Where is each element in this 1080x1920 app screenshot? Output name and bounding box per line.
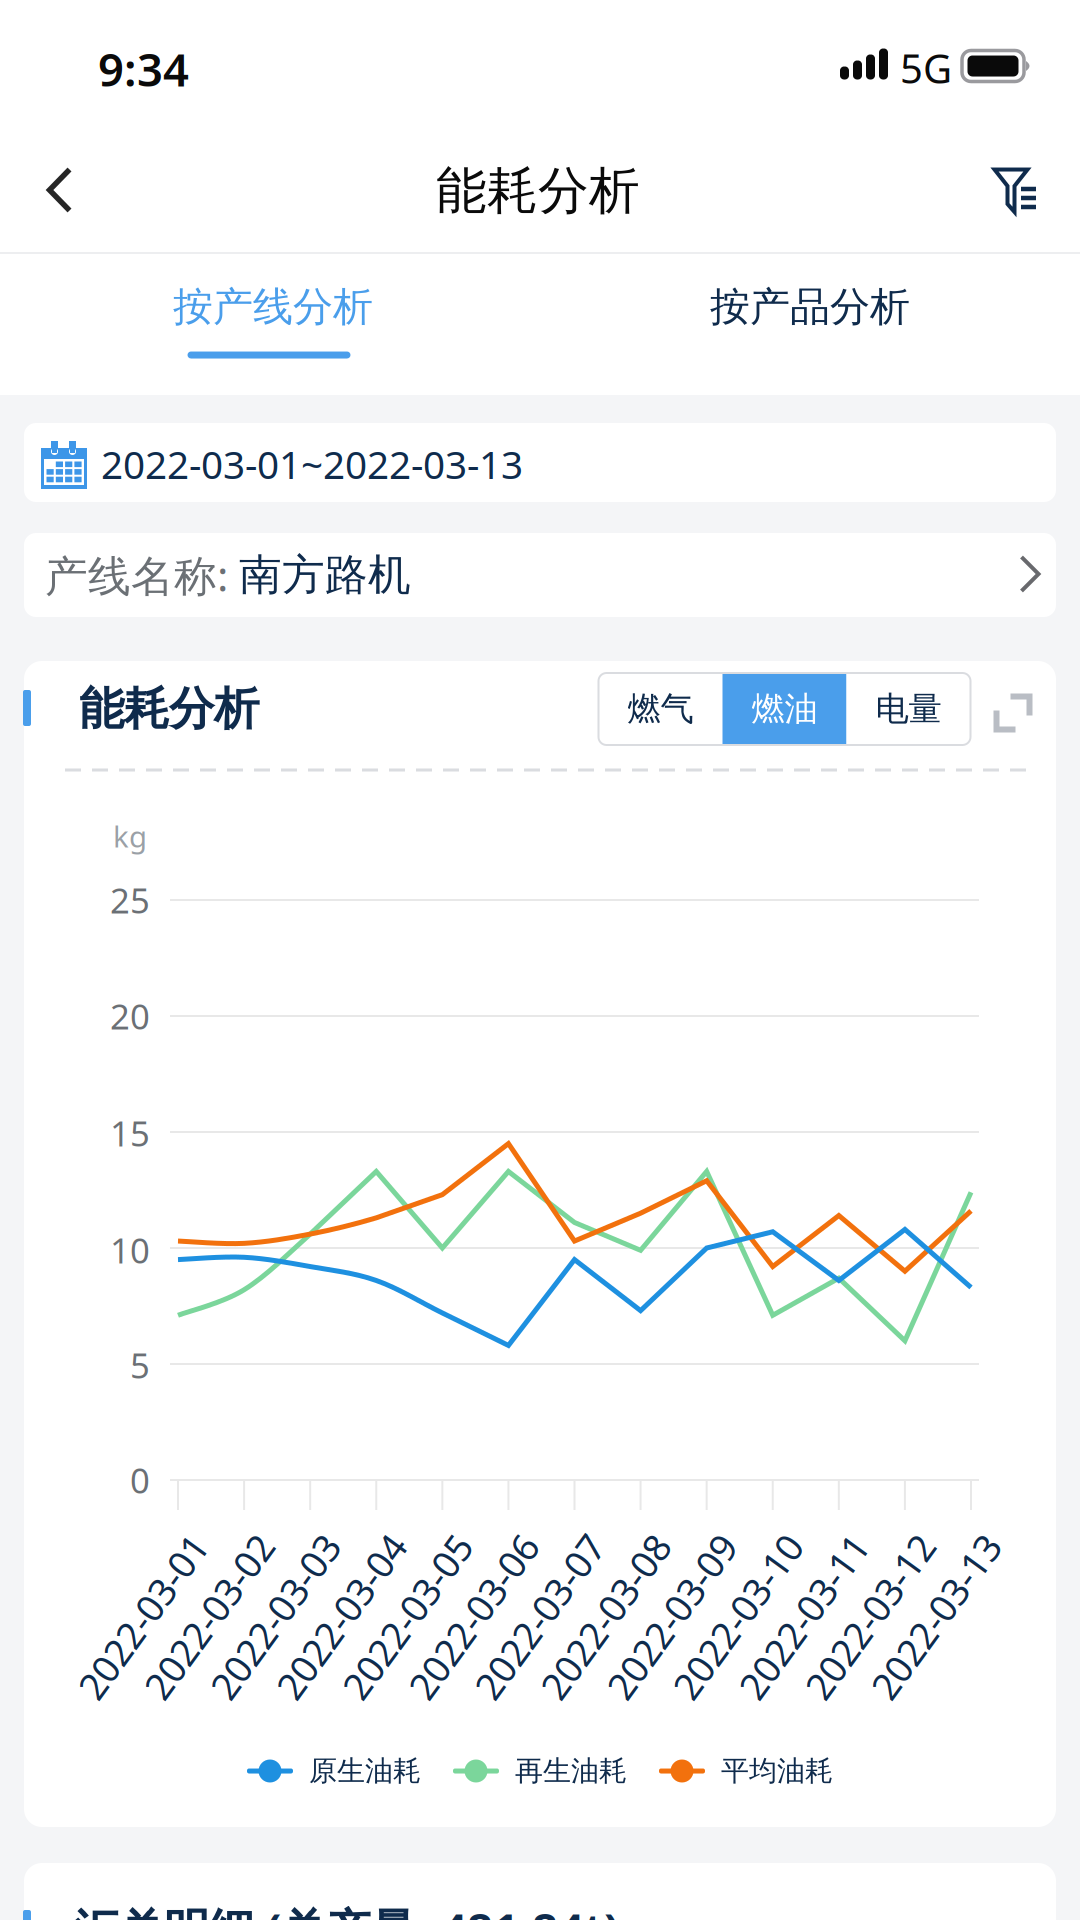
staticText: 2022-03-13 <box>854 1619 1046 1669</box>
staticText: 15 <box>110 1110 150 1156</box>
staticText: 按产线分析 <box>173 282 373 331</box>
staticText: 平均油耗 <box>721 1754 833 1788</box>
staticText: kg <box>113 816 147 855</box>
staticText: 2022-03-10 <box>656 1619 848 1669</box>
staticText: 汇总明细 (总产量: 481.84t) <box>74 1899 619 1920</box>
button[interactable]: Filter <box>966 131 1066 251</box>
staticText: 2022-03-08 <box>524 1619 716 1669</box>
staticText: 2022-03-11 <box>722 1619 914 1669</box>
staticText: 燃气 <box>627 688 693 729</box>
button[interactable]: 燃油 <box>722 673 846 745</box>
staticText: 按产品分析 <box>710 282 910 331</box>
staticText: 0 <box>130 1457 150 1503</box>
staticText: 2022-03-06 <box>391 1619 583 1669</box>
staticText: 再生油耗 <box>515 1754 627 1788</box>
staticText: 产线名称: <box>45 547 239 603</box>
staticText: 2022-03-04 <box>259 1619 451 1669</box>
staticText: 2022-03-12 <box>788 1619 980 1669</box>
staticText: 25 <box>110 877 150 923</box>
staticText: 能耗分析 <box>436 160 640 222</box>
staticText: 2022-03-02 <box>127 1619 319 1669</box>
button[interactable]: 燃气 <box>598 673 722 745</box>
staticText: 燃油 <box>751 688 817 729</box>
staticText: 20 <box>110 993 150 1039</box>
button[interactable]: 电量 <box>846 673 970 745</box>
staticText: 能耗分析 <box>79 681 259 737</box>
staticText: 2022-03-09 <box>590 1619 782 1669</box>
button[interactable]: 产线名称: <box>24 533 1056 617</box>
staticText: 2022-03-05 <box>325 1619 517 1669</box>
staticText: 10 <box>110 1227 150 1273</box>
staticText: 5 <box>130 1342 150 1388</box>
button[interactable]: Expand chart <box>982 682 1044 744</box>
button[interactable]: Back <box>10 130 110 250</box>
button[interactable]: 2022-03-01~2022-03-13 <box>24 423 1056 502</box>
staticText: 南方路机 <box>239 549 411 601</box>
staticText: 5G <box>900 41 952 94</box>
staticText: 原生油耗 <box>309 1754 421 1788</box>
staticText: 2022-03-01~2022-03-13 <box>101 438 523 490</box>
staticText: 电量 <box>875 688 941 729</box>
staticText: 2022-03-01 <box>61 1619 253 1669</box>
button[interactable]: 按产品分析 <box>540 254 1080 395</box>
staticText: 9:34 <box>98 39 189 99</box>
staticText: 2022-03-07 <box>457 1619 649 1669</box>
staticText: 2022-03-03 <box>193 1619 385 1669</box>
button[interactable]: 按产线分析 <box>0 254 540 395</box>
